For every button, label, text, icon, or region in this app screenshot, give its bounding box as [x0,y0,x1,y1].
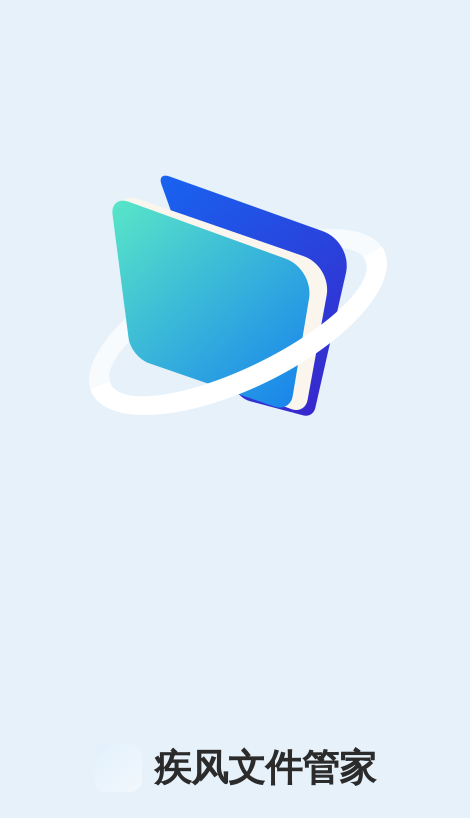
staticText: 疾风文件管家 [154,745,376,791]
